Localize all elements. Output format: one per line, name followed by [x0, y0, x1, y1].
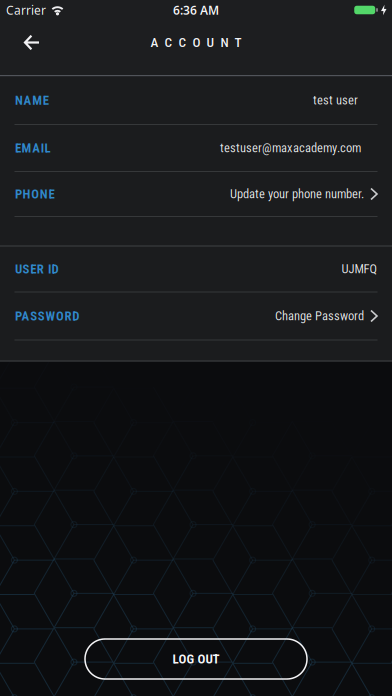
staticText: Update your phone number.	[230, 187, 364, 201]
staticText: Carrier	[6, 2, 46, 18]
button[interactable]: USER ID	[0, 246, 392, 291]
button[interactable]: Back	[0, 15, 51, 70]
staticText: PASSWORD	[15, 308, 79, 323]
staticText: UJMFQ	[341, 262, 377, 276]
staticText: 6:36 AM	[173, 2, 219, 18]
button[interactable]: PHONE	[0, 172, 392, 216]
button[interactable]: PASSWORD	[0, 292, 392, 339]
staticText: NAME	[15, 93, 49, 108]
staticText: EMAIL	[15, 140, 50, 155]
staticText: testuser@maxacademy.com	[220, 141, 361, 155]
staticText: test user	[313, 93, 358, 108]
staticText: LOG OUT	[172, 651, 219, 667]
staticText: PHONE	[15, 186, 54, 201]
button[interactable]: NAME	[0, 76, 392, 124]
staticText: Change Password	[275, 309, 364, 323]
button[interactable]: LOG OUT	[85, 639, 307, 679]
staticText: USER ID	[15, 261, 59, 276]
staticText: ACCOUNT	[150, 35, 241, 50]
button[interactable]: EMAIL	[0, 125, 392, 171]
